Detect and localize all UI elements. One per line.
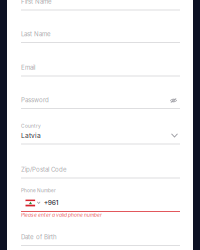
- staticText: Country: [21, 123, 41, 129]
- staticText: Last Name: [21, 30, 51, 38]
- staticText: Password: [21, 96, 49, 104]
- button[interactable]: Select country: [171, 134, 177, 138]
- staticText: Latvia: [21, 131, 41, 140]
- staticText: +961: [44, 198, 59, 207]
- button[interactable]: Select country code: [25, 199, 40, 206]
- staticText: Date of Birth: [21, 233, 57, 241]
- button[interactable]: Email: [21, 43, 180, 75]
- button[interactable]: Show password: [170, 97, 177, 103]
- staticText: Phone Number: [21, 188, 56, 193]
- staticText: Please enter a valid phone number: [21, 212, 102, 218]
- button[interactable]: Phone Number: [21, 178, 180, 218]
- button[interactable]: Date of Birth: [21, 219, 180, 245]
- button[interactable]: Last Name: [21, 10, 180, 42]
- staticText: Zip/Postal Code: [21, 166, 67, 173]
- button[interactable]: Password: [21, 76, 180, 108]
- button[interactable]: First Name: [21, 0, 180, 9]
- button[interactable]: Country: [21, 109, 180, 143]
- button[interactable]: Zip/Postal Code: [21, 144, 180, 177]
- staticText: First Name: [21, 0, 52, 5]
- staticText: Email: [21, 64, 35, 71]
